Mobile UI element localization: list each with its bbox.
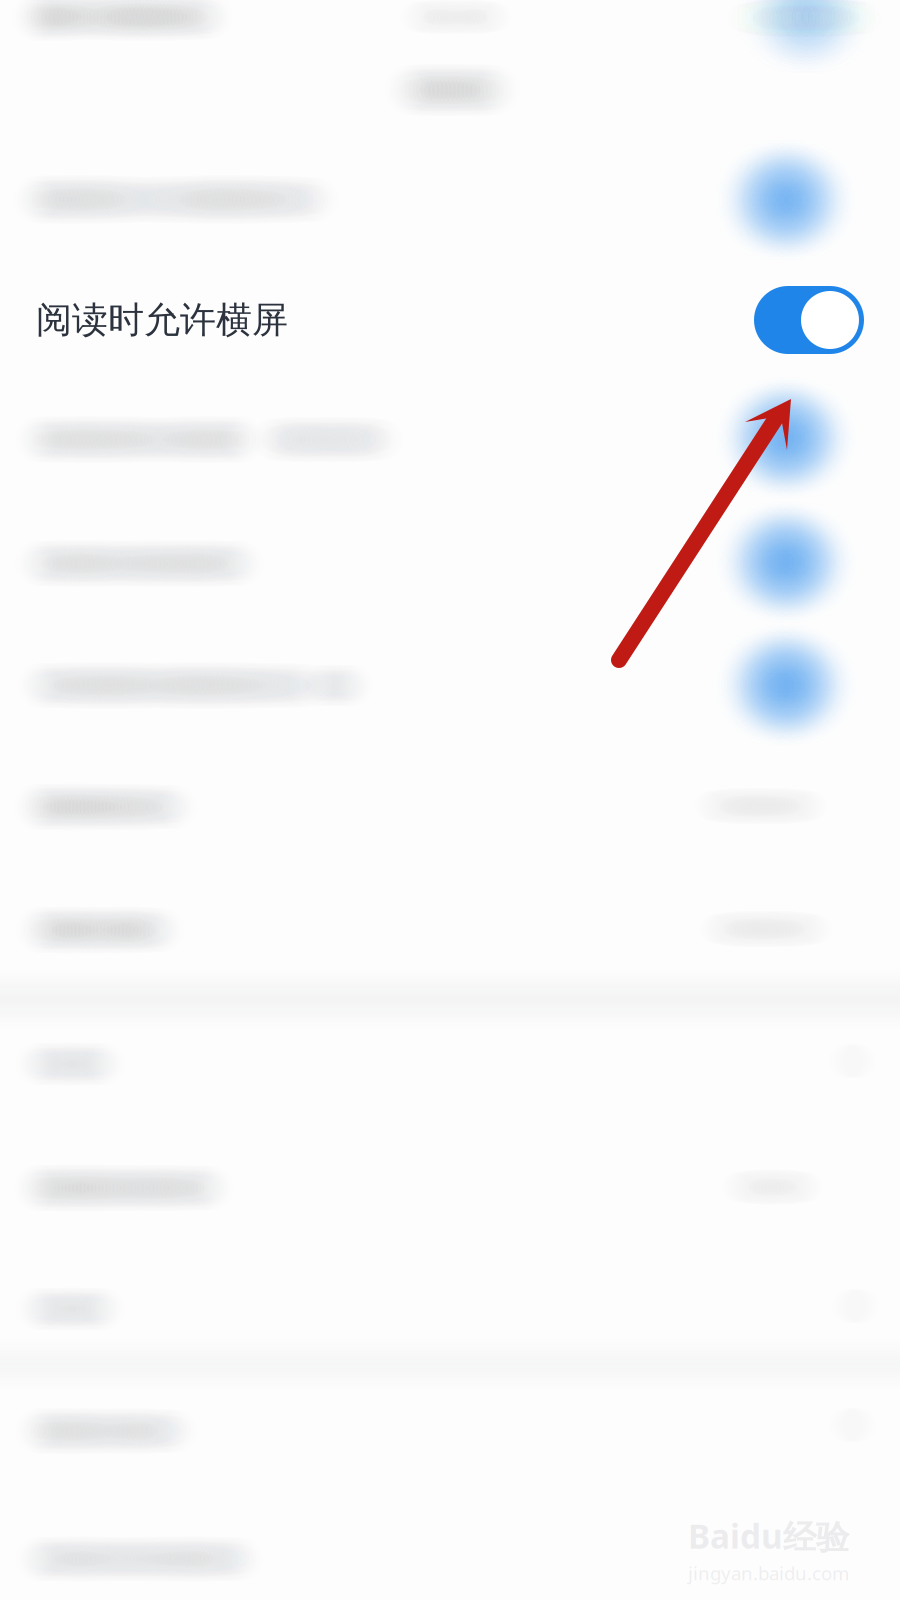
staticText: jingyan.baidu.com	[688, 1561, 849, 1585]
button[interactable]: 阅读时允许横屏	[0, 259, 900, 381]
staticText: Baidu经验	[688, 1514, 849, 1558]
staticText: 阅读时允许横屏	[36, 298, 288, 342]
